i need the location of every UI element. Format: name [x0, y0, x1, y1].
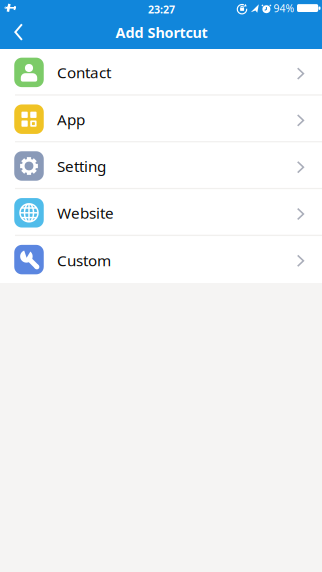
- button[interactable]: App: [0, 96, 322, 143]
- staticText: 94%: [273, 1, 294, 15]
- button[interactable]: Website: [0, 189, 322, 236]
- staticText: Website: [57, 202, 114, 223]
- button[interactable]: Contact: [0, 49, 322, 96]
- staticText: App: [57, 109, 85, 130]
- button[interactable]: Setting: [0, 143, 322, 189]
- staticText: Contact: [57, 62, 111, 83]
- staticText: Add Shortcut: [115, 22, 207, 42]
- staticText: Setting: [57, 156, 106, 176]
- staticText: 23:27: [148, 2, 175, 16]
- button[interactable]: Back: [0, 20, 44, 49]
- staticText: Custom: [57, 250, 111, 271]
- button[interactable]: Custom: [0, 236, 322, 283]
